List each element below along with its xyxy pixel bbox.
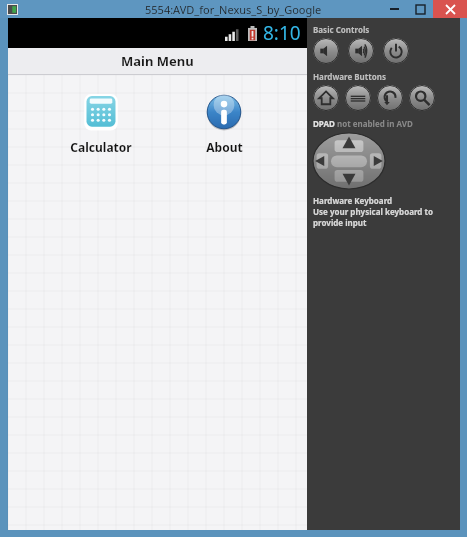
staticText: Calculator	[70, 139, 132, 155]
button[interactable]: D-pad	[313, 133, 385, 189]
staticText: not enabled in AVD	[337, 118, 413, 129]
button[interactable]: Back	[377, 85, 403, 111]
button[interactable]: Search	[409, 85, 435, 111]
staticText: Use your physical keyboard to provide in…	[313, 206, 460, 228]
button[interactable]: Menu	[345, 85, 371, 111]
staticText: Main Menu	[121, 52, 194, 70]
staticText: Hardware Buttons	[313, 71, 386, 82]
button[interactable]: Calculator	[60, 87, 142, 159]
staticText: Hardware Keyboard	[313, 195, 393, 206]
staticText: About	[206, 139, 243, 155]
button[interactable]: Minimize	[381, 0, 407, 18]
staticText: 8:10	[263, 20, 301, 46]
staticText: Basic Controls	[313, 24, 370, 35]
staticText: 5554:AVD_for_Nexus_S_by_Google	[145, 2, 322, 17]
button[interactable]: Maximize	[407, 0, 433, 18]
button[interactable]: Volume down	[313, 38, 339, 64]
button[interactable]: Power	[383, 38, 409, 64]
button[interactable]: About	[193, 87, 255, 159]
button[interactable]: Volume up	[348, 38, 374, 64]
button[interactable]: Close	[433, 0, 467, 18]
button[interactable]: Home	[313, 85, 339, 111]
staticText: DPAD	[313, 118, 337, 129]
